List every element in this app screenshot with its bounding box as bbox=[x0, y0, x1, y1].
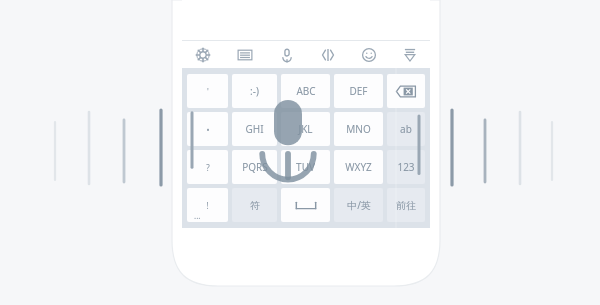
staticText: WXYZ bbox=[345, 160, 372, 174]
staticText: • bbox=[206, 124, 210, 135]
staticText: ab bbox=[400, 122, 412, 136]
button[interactable]: Voice input bbox=[266, 41, 307, 68]
button[interactable]: Emoji bbox=[348, 41, 389, 68]
staticText: PQRS bbox=[242, 160, 268, 174]
staticText: 中/英 bbox=[347, 198, 371, 212]
staticText: MNO bbox=[346, 122, 371, 136]
button[interactable]: Space bbox=[281, 188, 330, 222]
button[interactable]: ABC bbox=[281, 74, 330, 108]
button[interactable]: 前往 bbox=[387, 188, 425, 222]
button[interactable]: TUV bbox=[281, 150, 330, 184]
staticText: 前往 bbox=[396, 199, 416, 212]
staticText: JKL bbox=[298, 122, 313, 136]
staticText: ABC bbox=[296, 84, 316, 98]
button[interactable]: • bbox=[187, 112, 228, 146]
button[interactable]: PQRS bbox=[232, 150, 277, 184]
staticText: TUV bbox=[296, 160, 315, 174]
button[interactable]: Hide keyboard bbox=[389, 41, 430, 68]
button[interactable]: :-) bbox=[232, 74, 277, 108]
button[interactable]: ! bbox=[187, 188, 228, 222]
button[interactable]: Handwriting bbox=[307, 41, 348, 68]
button[interactable]: WXYZ bbox=[334, 150, 383, 184]
staticText: 123 bbox=[397, 160, 415, 174]
staticText: ... bbox=[194, 210, 201, 221]
button[interactable]: ab bbox=[387, 112, 425, 146]
button[interactable]: ? bbox=[187, 150, 228, 184]
button[interactable]: 符 bbox=[232, 188, 277, 222]
button[interactable]: DEF bbox=[334, 74, 383, 108]
button[interactable]: GHI bbox=[232, 112, 277, 146]
button[interactable]: JKL bbox=[281, 112, 330, 146]
button[interactable]: Settings bbox=[182, 41, 224, 68]
staticText: DEF bbox=[349, 84, 368, 98]
button[interactable]: 中/英 bbox=[334, 188, 383, 222]
button[interactable]: Keyboard layout bbox=[224, 41, 266, 68]
staticText: ! bbox=[206, 200, 209, 211]
button[interactable]: Delete bbox=[387, 74, 425, 108]
staticText: ? bbox=[206, 162, 210, 173]
button[interactable]: MNO bbox=[334, 112, 383, 146]
staticText: ' bbox=[207, 86, 209, 97]
button[interactable]: 123 bbox=[387, 150, 425, 184]
staticText: 符 bbox=[250, 199, 260, 212]
staticText: :-) bbox=[250, 84, 259, 98]
staticText: GHI bbox=[245, 122, 264, 136]
